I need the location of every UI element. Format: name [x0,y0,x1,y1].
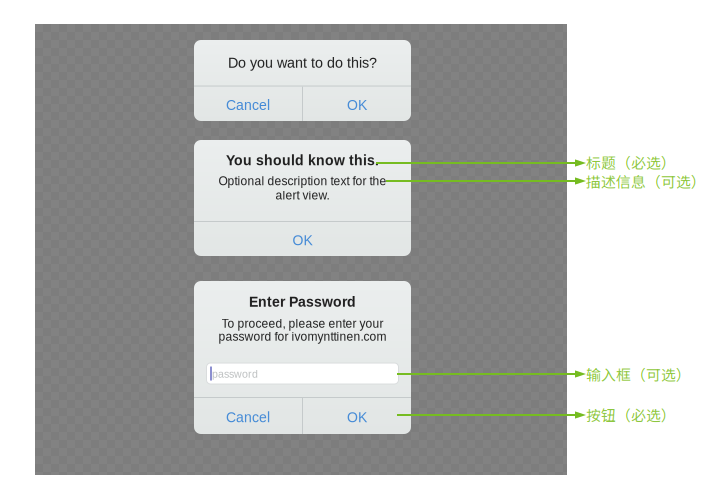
staticText: Do you want to do this? [228,55,377,71]
staticText: alert view. [275,189,329,202]
staticText: Optional description text for the [218,174,386,188]
staticText: OK [292,233,312,248]
button[interactable]: OK [303,398,411,434]
staticText: 描述信息（可选） [586,170,706,192]
button[interactable]: OK [194,222,411,256]
staticText: Cancel [226,97,270,113]
staticText: Enter Password [249,294,356,310]
staticText: OK [347,410,367,425]
staticText: You should know this. [226,153,379,168]
staticText: password for ivomynttinen.com [218,330,386,343]
button[interactable]: Cancel [194,86,302,121]
staticText: Cancel [226,410,270,425]
staticText: password [212,368,258,380]
staticText: To proceed, please enter your [221,317,383,330]
staticText: 输入框（可选） [586,363,691,385]
staticText: 按钮（必选） [586,404,676,425]
button[interactable]: OK [303,86,411,121]
button[interactable]: Cancel [194,398,302,434]
staticText: OK [347,97,367,113]
staticText: 标题（必选） [586,151,676,173]
